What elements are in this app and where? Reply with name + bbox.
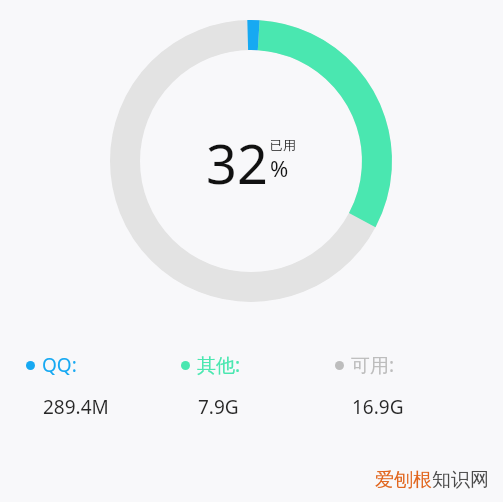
staticText: 爱刨根 <box>375 468 432 492</box>
staticText: 其他: <box>197 352 241 378</box>
staticText: 已用 <box>270 137 296 153</box>
staticText: 可用: <box>351 352 395 378</box>
staticText: % <box>270 153 289 183</box>
staticText: 32 <box>206 126 268 200</box>
button[interactable]: Storage usage chart <box>110 20 392 302</box>
button[interactable]: 爱刨根 <box>375 468 489 492</box>
staticText: 16.9G <box>352 394 404 420</box>
staticText: QQ: <box>42 352 77 378</box>
button[interactable]: QQ: <box>26 352 181 420</box>
staticText: 289.4M <box>43 394 109 420</box>
staticText: 7.9G <box>198 394 239 420</box>
staticText: 知识网 <box>432 468 489 492</box>
button[interactable]: 可用: <box>335 352 489 420</box>
button[interactable]: 其他: <box>181 352 335 420</box>
